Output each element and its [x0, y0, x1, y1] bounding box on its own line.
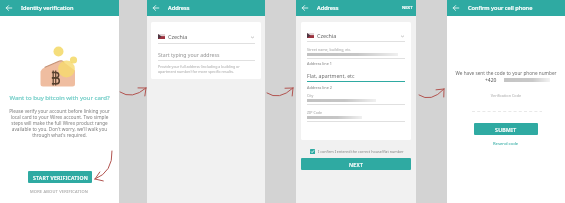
- staticText: Flat, apartment, etc: [307, 72, 355, 79]
- staticText: Provide your full address (including a b…: [158, 64, 255, 74]
- staticText: Resend code: [493, 141, 519, 147]
- staticText: Want to buy bitcoin with your card?: [0, 94, 119, 102]
- button[interactable]: MORE ABOUT VERIFICATION: [0, 187, 119, 195]
- staticText: +420: [485, 77, 497, 84]
- button[interactable]: I confirm I entered the correct house/fl…: [310, 149, 410, 154]
- button[interactable]: Back: [299, 2, 311, 14]
- button[interactable]: Back: [150, 2, 162, 14]
- staticText: SUBMIT: [495, 126, 517, 133]
- staticText: Verification Code: [447, 93, 565, 98]
- staticText: ZIP Code: [307, 110, 323, 115]
- staticText: NEXT: [402, 5, 413, 11]
- staticText: Please verify your account before linkin…: [8, 108, 111, 138]
- staticText: MORE ABOUT VERIFICATION: [30, 189, 89, 194]
- button[interactable]: Czechia: [307, 32, 405, 39]
- staticText: Czechia: [317, 32, 337, 39]
- staticText: Start typing your address: [158, 51, 220, 58]
- button[interactable]: START VERIFICATION: [28, 171, 92, 183]
- staticText: We have sent the code to your phone numb…: [447, 70, 565, 76]
- button[interactable]: NEXT: [402, 5, 413, 11]
- staticText: Address: [317, 4, 339, 12]
- staticText: Identity verification: [21, 4, 74, 12]
- button[interactable]: Back: [450, 2, 462, 14]
- staticText: Street name, building, etc.: [307, 47, 352, 52]
- button[interactable]: SUBMIT: [474, 123, 538, 135]
- staticText: NEXT: [349, 161, 364, 168]
- staticText: Address line 1: [307, 61, 332, 66]
- button[interactable]: Resend code: [447, 140, 565, 148]
- staticText: Confirm your cell phone: [468, 4, 533, 12]
- button[interactable]: NEXT: [301, 158, 411, 170]
- staticText: START VERIFICATION: [33, 174, 88, 181]
- staticText: Address line 2: [307, 85, 332, 90]
- staticText: Czechia: [168, 33, 188, 40]
- staticText: I confirm I entered the correct house/fl…: [318, 149, 404, 154]
- staticText: City: [307, 93, 314, 98]
- button[interactable]: Back: [3, 2, 15, 14]
- staticText: Address: [168, 4, 190, 12]
- button[interactable]: Czechia: [158, 33, 255, 40]
